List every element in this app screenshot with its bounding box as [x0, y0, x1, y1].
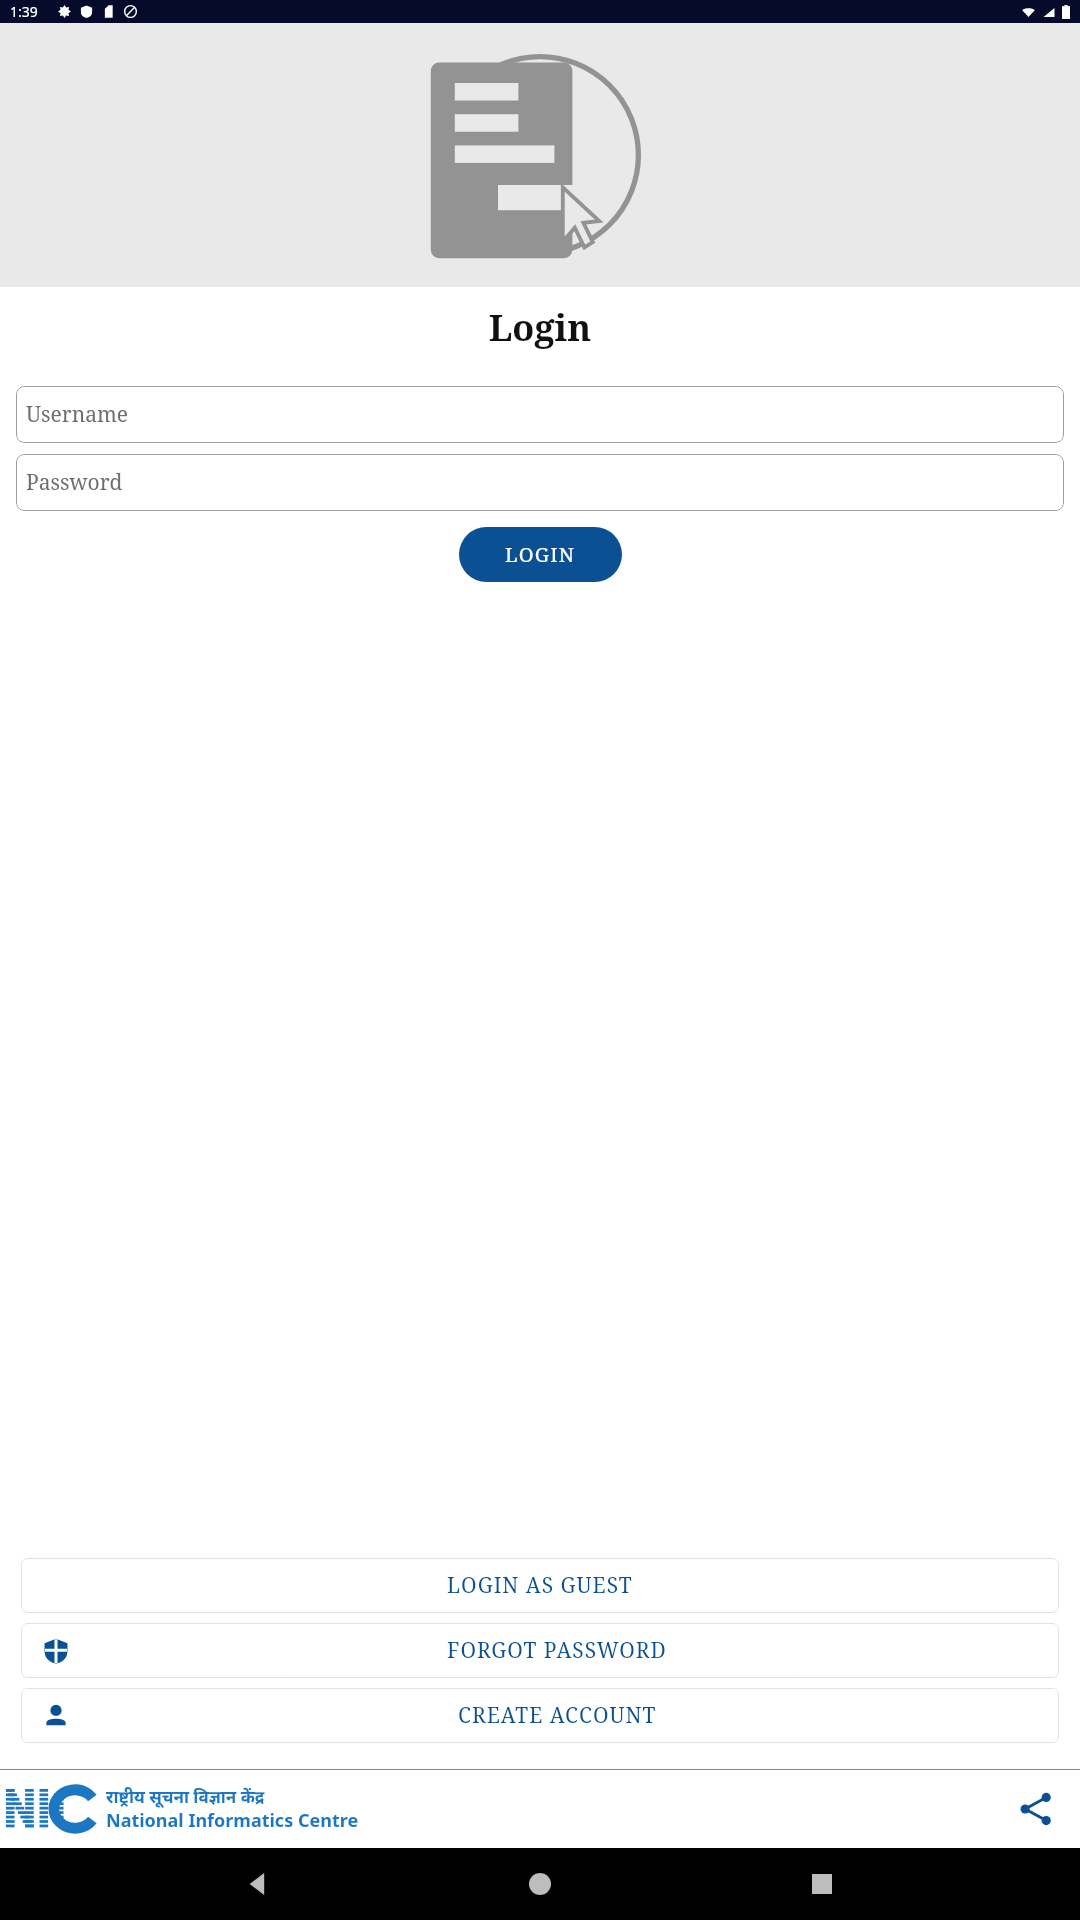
staticText: 1:39 [10, 2, 38, 21]
button[interactable]: FORGOT PASSWORD [21, 1623, 1059, 1678]
button[interactable]: LOGIN [459, 527, 622, 582]
button[interactable]: LOGIN AS GUEST [21, 1558, 1059, 1613]
staticText: Username [26, 400, 129, 429]
button[interactable]: Home [516, 1860, 564, 1908]
staticText: National Informatics Centre [106, 1808, 359, 1833]
button[interactable]: Back [234, 1860, 282, 1908]
staticText: LOGIN AS GUEST [447, 1571, 633, 1600]
button[interactable]: Password [16, 454, 1064, 511]
staticText: LOGIN [505, 541, 576, 568]
button[interactable]: Share [1012, 1785, 1060, 1833]
staticText: CREATE ACCOUNT [458, 1701, 657, 1730]
button[interactable]: Recent apps [798, 1860, 846, 1908]
staticText: Password [26, 468, 123, 497]
button[interactable]: Username [16, 386, 1064, 443]
staticText: FORGOT PASSWORD [447, 1636, 667, 1665]
staticText: राष्ट्रीय सूचना विज्ञान केंद्र [106, 1785, 265, 1808]
button[interactable]: CREATE ACCOUNT [21, 1688, 1059, 1743]
staticText: Login [0, 303, 1080, 352]
